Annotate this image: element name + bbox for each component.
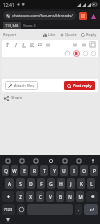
button[interactable]: Format 6 [71,41,78,48]
button[interactable]: G [47,178,55,189]
button[interactable]: K [77,178,85,189]
button[interactable]: Format 2 [20,41,27,48]
button[interactable]: Emoji [17,204,25,215]
button[interactable]: S [16,178,25,189]
button[interactable]: L [87,178,95,189]
button[interactable]: B [56,191,64,202]
staticText: E [23,168,26,174]
button[interactable]: Z [16,191,24,202]
button[interactable]: . [75,204,82,215]
button[interactable]: R [30,165,38,176]
button[interactable]: Insert [73,50,80,57]
button[interactable]: W [11,165,18,176]
button[interactable]: U [60,165,68,176]
button[interactable]: O [80,165,88,176]
button[interactable]: Link [91,51,96,56]
staticText: . [78,207,80,212]
button[interactable]: V [46,191,54,202]
button[interactable]: C [36,191,44,202]
button[interactable]: Format 0 [4,41,11,48]
staticText: C [39,194,42,200]
staticText: I [73,168,75,174]
button[interactable]: Extension [79,12,87,20]
button[interactable]: H [57,178,65,189]
staticText: G [49,181,53,187]
staticText: M [78,194,83,200]
button[interactable]: Sticker [18,157,25,164]
button[interactable]: Share [4,95,23,101]
button[interactable]: Site settings [3,11,76,20]
button[interactable]: T [40,165,48,176]
staticText: Like [48,32,56,37]
staticText: 12:41 [3,2,15,8]
button[interactable]: J [67,178,75,189]
button[interactable]: N [66,191,74,202]
button[interactable]: Format 4 [36,41,43,48]
staticText: ?123 [4,207,13,212]
button[interactable]: I [70,165,78,176]
button[interactable]: Post reply [64,81,95,90]
button[interactable]: Like [43,32,56,37]
button[interactable]: Voice [89,157,96,164]
staticText: Post reply [73,83,92,88]
button[interactable]: Format 5 [44,41,51,48]
button[interactable]: Backspace [86,191,98,202]
staticText: N [68,194,72,200]
staticText: W [12,168,17,174]
button[interactable]: A [5,178,14,189]
staticText: S [19,181,22,187]
button[interactable]: Reply [81,32,97,37]
staticText: D [29,181,33,187]
button[interactable]: Enter [84,204,98,215]
other: Site settings [6,14,10,18]
staticText: R [33,168,36,174]
button[interactable]: D [27,178,35,189]
button[interactable]: GIF [32,157,39,164]
button[interactable]: Image [83,51,88,56]
button[interactable]: Undo [65,51,70,56]
button[interactable]: Settings [47,157,54,164]
button[interactable]: Report [3,32,17,38]
staticText: X [29,194,32,200]
button[interactable]: Attach files [5,81,38,90]
button[interactable]: Keyboard [4,157,11,164]
button[interactable]: Y [50,165,58,176]
staticText: Reply [86,32,97,37]
button[interactable]: F [37,178,45,189]
button[interactable]: E [20,165,28,176]
button[interactable]: Menu [89,12,97,20]
staticText: Quote [65,32,77,37]
staticText: T [43,168,46,174]
button[interactable]: Q [2,165,9,176]
staticText: Views 3 [23,23,36,28]
staticText: Share [11,95,23,101]
button[interactable]: Format 3 [28,41,35,48]
button[interactable]: Clipboard [61,157,68,164]
staticText: H [59,181,63,187]
button[interactable]: M [76,191,84,202]
button[interactable]: More [89,41,96,48]
staticText: U [62,168,66,174]
staticText: P [93,168,96,174]
button[interactable]: ?123 [2,204,15,215]
staticText: F [40,181,43,187]
staticText: Z [19,194,22,200]
staticText: A [8,181,11,187]
staticText: V [49,194,52,200]
button[interactable]: Quote [60,32,77,37]
staticText: Y [53,168,56,174]
staticText: L [90,181,93,187]
button[interactable]: P [90,165,98,176]
staticText: K [80,181,83,187]
button[interactable]: X [26,191,34,202]
staticText: J [70,181,72,187]
staticText: B [59,194,62,200]
button[interactable]: Theme [75,157,82,164]
staticText: chatzozo.com/forums/threads/ [12,13,73,19]
button[interactable]: Format 7 [80,41,87,48]
button[interactable]: Shift [2,191,14,202]
staticText: 113,348 [5,23,19,28]
button[interactable]: Format 1 [12,41,19,48]
